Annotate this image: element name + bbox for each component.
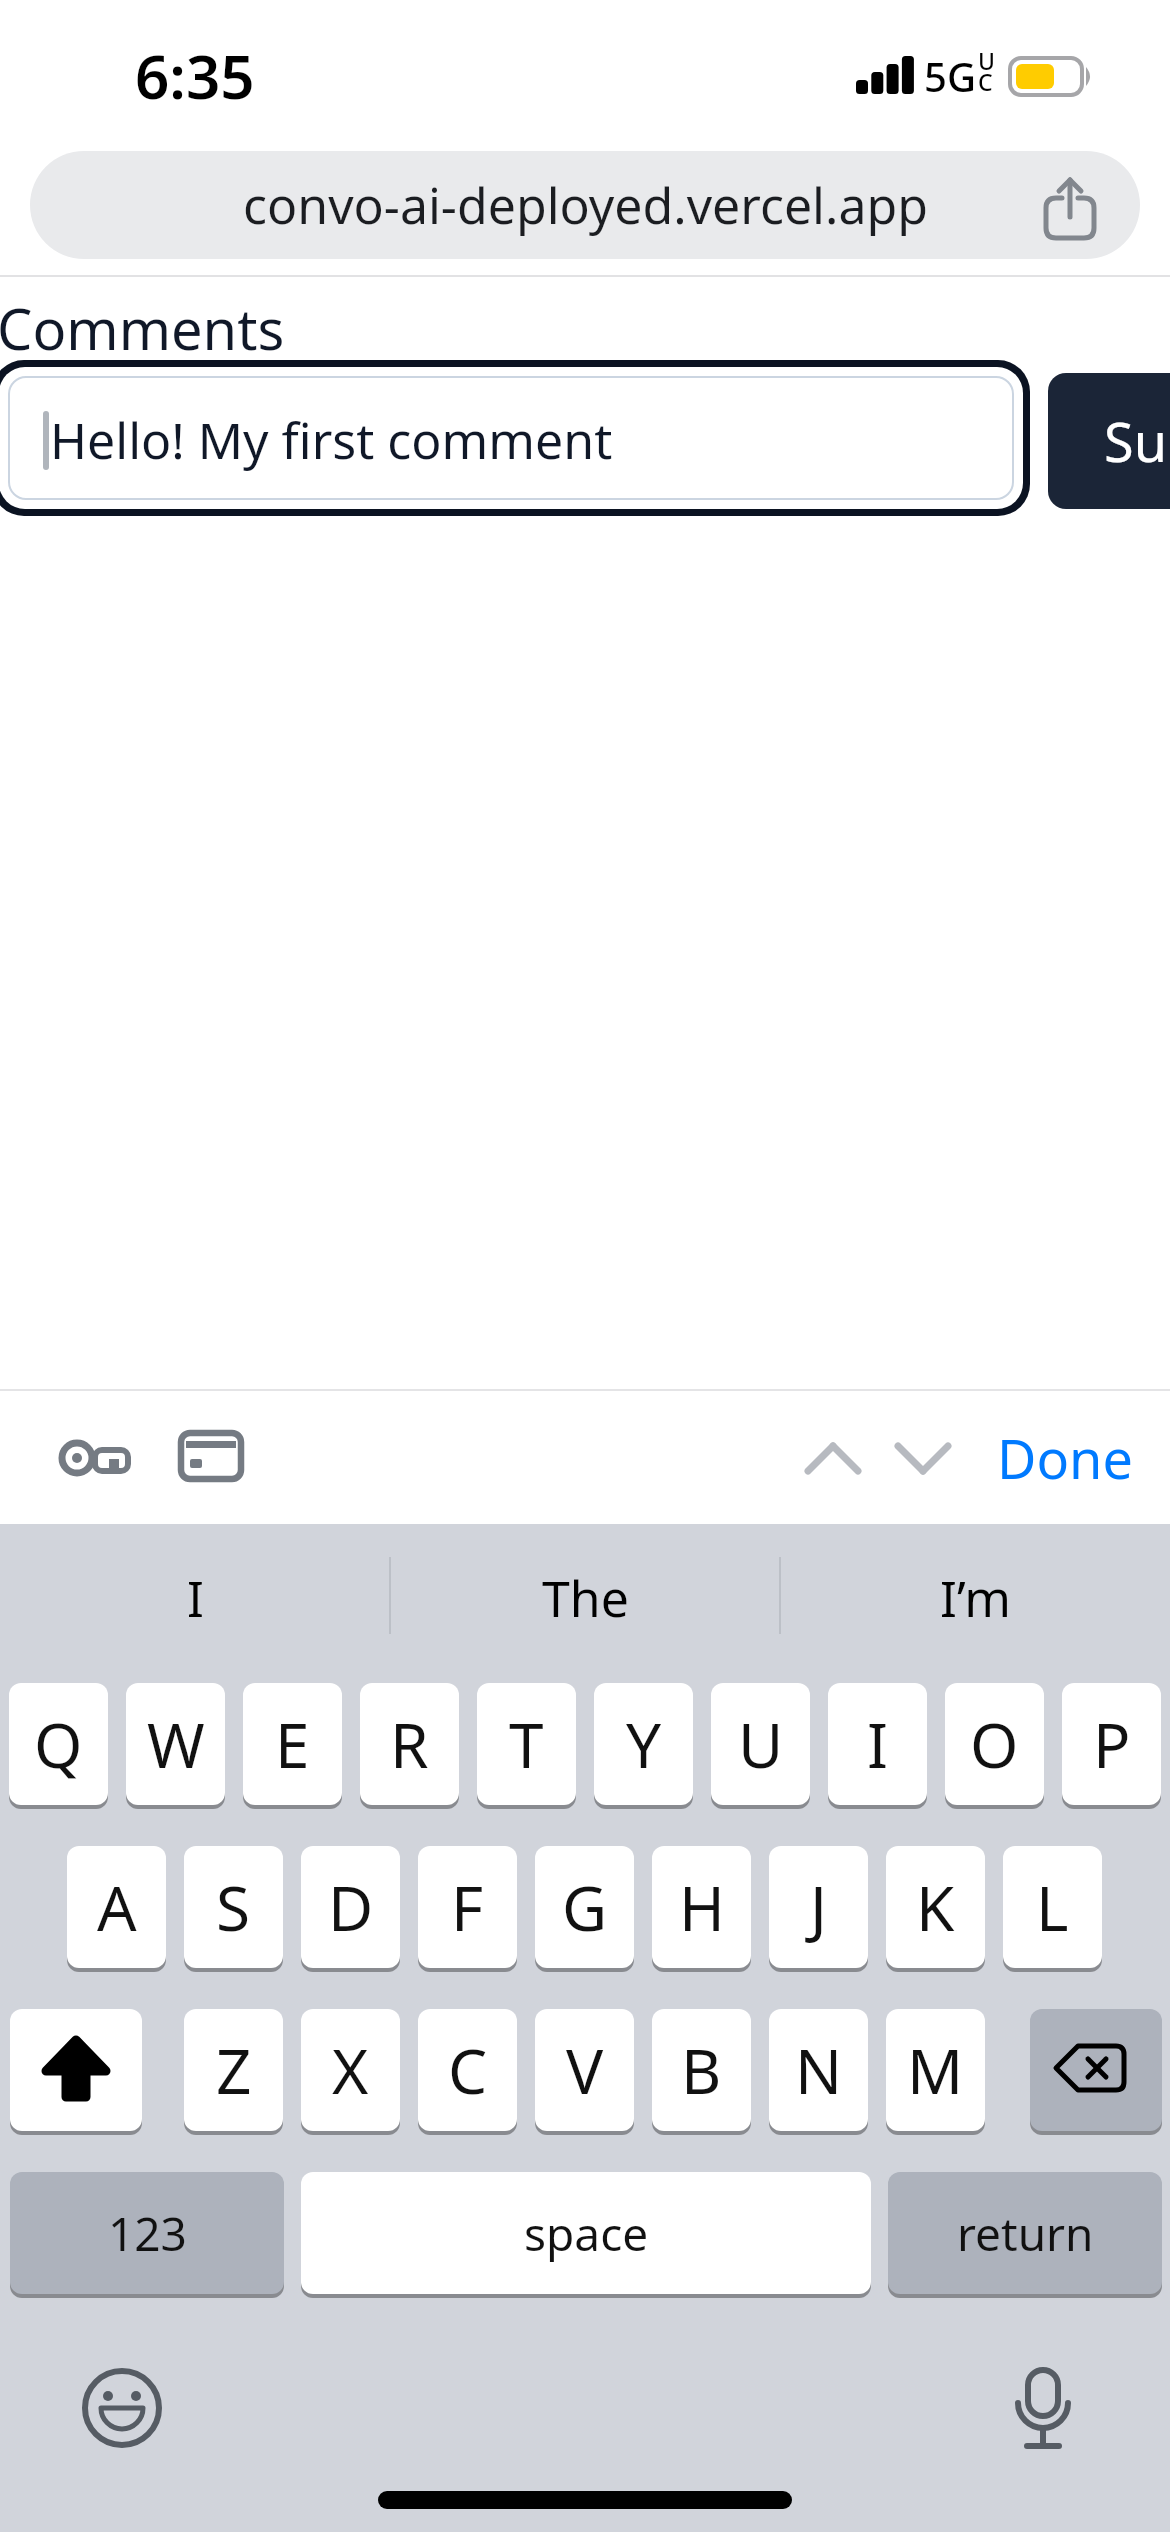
staticText: P xyxy=(1093,1702,1131,1786)
button[interactable]: D xyxy=(301,1846,400,1968)
button[interactable]: Y xyxy=(594,1683,693,1805)
staticText: C xyxy=(448,2028,488,2112)
button[interactable]: H xyxy=(652,1846,751,1968)
button[interactable] xyxy=(160,1420,260,1496)
button[interactable] xyxy=(8,376,1014,500)
button[interactable]: S xyxy=(184,1846,283,1968)
staticText: W xyxy=(147,1702,205,1786)
staticText: L xyxy=(1036,1865,1069,1949)
button[interactable]: The xyxy=(390,1552,780,1644)
staticText: Comments xyxy=(0,290,285,366)
staticText: I xyxy=(187,1564,204,1632)
staticText: I xyxy=(867,1702,889,1786)
button[interactable]: I xyxy=(0,1552,390,1644)
button[interactable]: space xyxy=(301,2172,871,2294)
staticText: B xyxy=(681,2028,722,2112)
staticText: K xyxy=(916,1865,955,1949)
staticText: Hello! My first comment xyxy=(50,406,613,474)
button[interactable]: E xyxy=(243,1683,342,1805)
button[interactable] xyxy=(1030,2009,1162,2131)
staticText: 6:35 xyxy=(135,35,255,117)
staticText: R xyxy=(390,1702,429,1786)
button[interactable]: Q xyxy=(9,1683,108,1805)
button[interactable]: return xyxy=(888,2172,1162,2294)
staticText: O xyxy=(970,1702,1019,1786)
button[interactable]: Z xyxy=(184,2009,283,2131)
button[interactable]: Submit xyxy=(1048,373,1170,509)
button[interactable]: J xyxy=(769,1846,868,1968)
staticText: Z xyxy=(216,2028,252,2112)
staticText: A xyxy=(97,1865,137,1949)
button[interactable] xyxy=(40,1420,150,1496)
button[interactable]: I xyxy=(828,1683,927,1805)
staticText: E xyxy=(275,1702,310,1786)
staticText: U xyxy=(978,45,995,76)
staticText: I’m xyxy=(940,1564,1011,1632)
staticText: D xyxy=(328,1865,374,1949)
staticText: S xyxy=(216,1865,251,1949)
button[interactable]: U xyxy=(711,1683,810,1805)
button[interactable]: V xyxy=(535,2009,634,2131)
button[interactable]: Done xyxy=(990,1420,1140,1496)
button[interactable]: B xyxy=(652,2009,751,2131)
staticText: C xyxy=(978,66,993,97)
staticText: 5G xyxy=(924,49,976,103)
button[interactable]: F xyxy=(418,1846,517,1968)
staticText: N xyxy=(795,2028,843,2112)
staticText: Submit xyxy=(1104,404,1170,478)
staticText: return xyxy=(957,2202,1094,2265)
button[interactable]: O xyxy=(945,1683,1044,1805)
staticText: H xyxy=(679,1865,725,1949)
staticText: G xyxy=(562,1865,608,1949)
staticText: Y xyxy=(626,1702,662,1786)
staticText: T xyxy=(509,1702,544,1786)
button[interactable]: N xyxy=(769,2009,868,2131)
staticText: F xyxy=(451,1865,484,1949)
staticText: M xyxy=(907,2028,964,2112)
button[interactable]: C xyxy=(418,2009,517,2131)
staticText: convo-ai-deployed.vercel.app xyxy=(243,171,928,239)
button[interactable]: convo-ai-deployed.vercel.app xyxy=(30,151,1140,259)
staticText: space xyxy=(524,2202,649,2265)
button[interactable]: M xyxy=(886,2009,985,2131)
staticText: Done xyxy=(997,1421,1133,1495)
button[interactable]: P xyxy=(1062,1683,1161,1805)
button[interactable]: L xyxy=(1003,1846,1102,1968)
staticText: Q xyxy=(34,1702,83,1786)
button[interactable]: T xyxy=(477,1683,576,1805)
staticText: J xyxy=(810,1865,827,1949)
button[interactable] xyxy=(10,2009,142,2131)
staticText: U xyxy=(738,1702,784,1786)
button[interactable]: I’m xyxy=(780,1552,1170,1644)
button[interactable]: X xyxy=(301,2009,400,2131)
button[interactable]: G xyxy=(535,1846,634,1968)
button[interactable]: W xyxy=(126,1683,225,1805)
button[interactable]: A xyxy=(67,1846,166,1968)
button[interactable]: R xyxy=(360,1683,459,1805)
staticText: 123 xyxy=(108,2202,187,2265)
button[interactable]: 123 xyxy=(10,2172,284,2294)
staticText: X xyxy=(332,2028,369,2112)
staticText: The xyxy=(542,1564,629,1632)
staticText: V xyxy=(566,2028,604,2112)
button[interactable]: K xyxy=(886,1846,985,1968)
